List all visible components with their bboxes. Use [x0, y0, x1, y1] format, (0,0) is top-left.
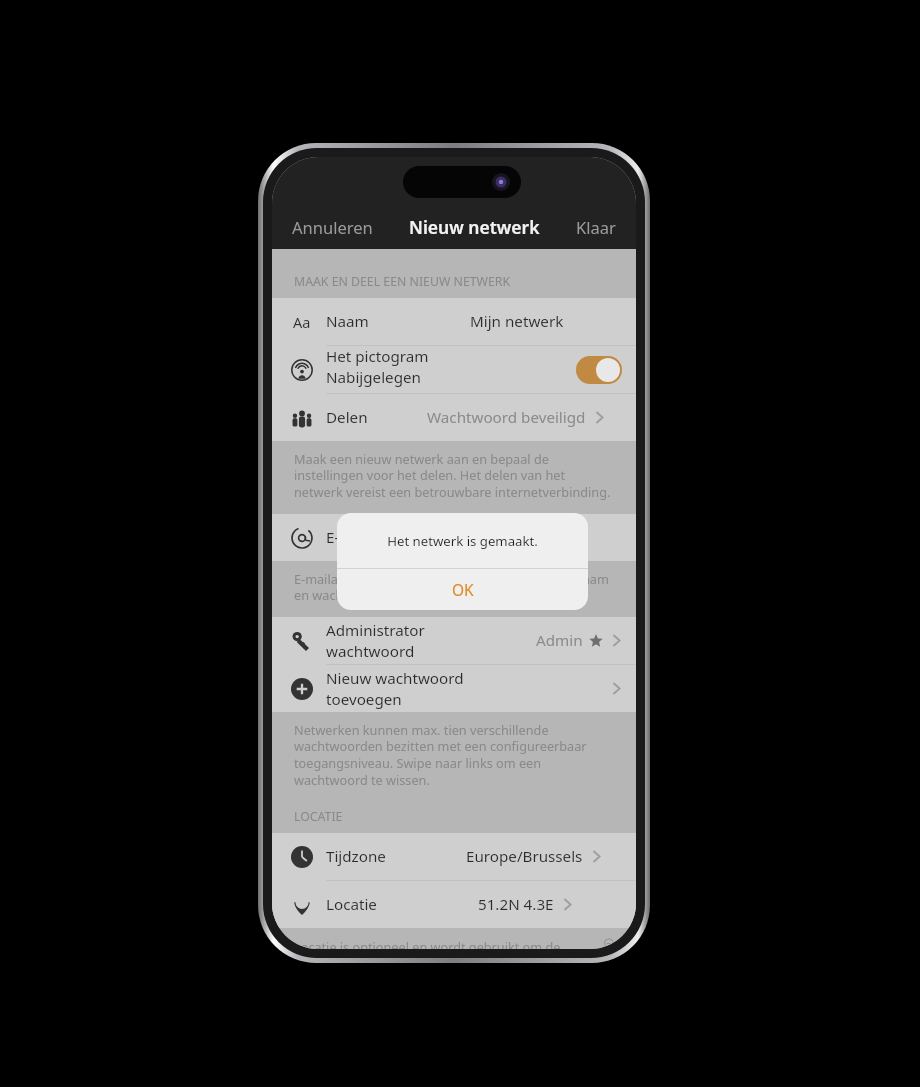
- button[interactable]: Tijdzone: [272, 833, 636, 880]
- staticText: ?: [606, 938, 612, 949]
- staticText: Administratorwachtwoord: [326, 620, 431, 662]
- staticText: Netwerken kunnen max. tien verschillende…: [294, 721, 614, 789]
- staticText: Klaar: [576, 216, 616, 238]
- staticText: Locatie: [326, 894, 377, 915]
- button[interactable]: Administratorwachtwoord: [272, 617, 636, 664]
- staticText: Het netwerk is gemaakt.: [387, 532, 538, 550]
- staticText: Nieuw netwerk: [409, 215, 540, 239]
- staticText: Mijn netwerk: [470, 311, 564, 332]
- staticText: 51.2N 4.3E: [478, 894, 554, 915]
- staticText: Naam: [326, 311, 369, 332]
- staticText: E-mail: [326, 527, 370, 548]
- staticText: Het pictogram Nabijgelegen lam…: [326, 346, 449, 393]
- button[interactable]: Klaar: [574, 212, 618, 242]
- button[interactable]: Locatie: [272, 881, 636, 928]
- button[interactable]: Het pictogram Nabijgelegen lam…: [272, 346, 636, 393]
- staticText: LOCATIE: [294, 808, 343, 825]
- staticText: Wachtwoord beveiligd: [427, 407, 586, 428]
- staticText: Aa: [293, 312, 311, 332]
- staticText: Europe/Brussels: [466, 846, 583, 867]
- staticText: MAAK EN DEEL EEN NIEUW NETWERK: [294, 273, 511, 290]
- button[interactable]: Aa: [272, 298, 636, 345]
- staticText: Delen: [326, 407, 368, 428]
- staticText: OK: [452, 579, 474, 600]
- staticText: E-mailadres voor het herstellen van de n…: [294, 570, 614, 604]
- button[interactable]: Delen: [272, 394, 636, 441]
- staticText: Locatie is optioneel en wordt gebruikt o…: [294, 938, 578, 949]
- staticText: Annuleren: [292, 216, 373, 238]
- button[interactable]: Toggle: [576, 356, 622, 384]
- button[interactable]: Annuleren: [290, 212, 375, 242]
- button[interactable]: E-mail: [272, 514, 636, 561]
- staticText: Tijdzone: [326, 846, 386, 867]
- staticText: naam@net.be: [468, 527, 568, 548]
- button[interactable]: Nieuw wachtwoord toevoegen: [272, 665, 636, 712]
- staticText: Admin: [536, 630, 583, 651]
- staticText: Nieuw wachtwoord toevoegen: [326, 668, 464, 710]
- button[interactable]: OK: [337, 569, 588, 610]
- staticText: Maak een nieuw netwerk aan en bepaal de …: [294, 450, 614, 501]
- button[interactable]: Help: [596, 938, 622, 949]
